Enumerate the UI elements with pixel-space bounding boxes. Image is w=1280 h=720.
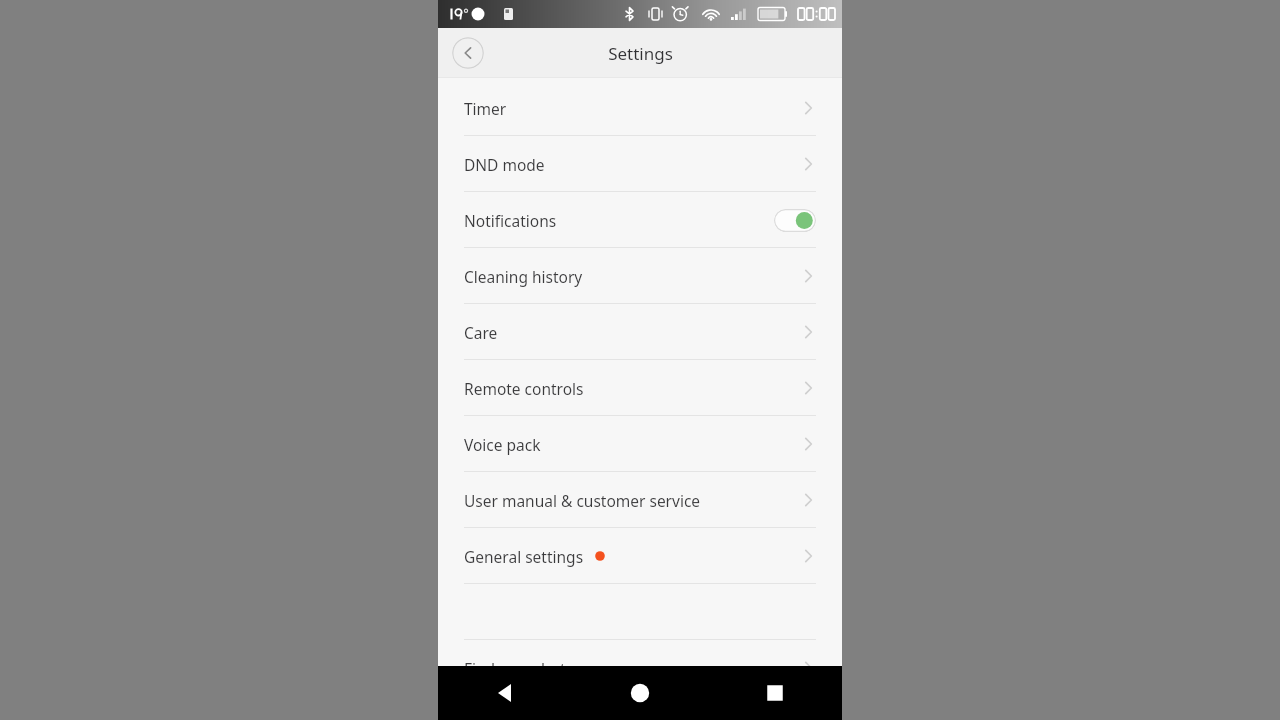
- staticText: Cleaning history: [464, 266, 583, 287]
- button[interactable]: DND mode: [438, 136, 842, 192]
- staticText: Find my robot vacuum: [464, 658, 628, 679]
- staticText: DND mode: [464, 154, 545, 175]
- button[interactable]: Find my robot vacuum: [438, 640, 842, 696]
- staticText: Remote controls: [464, 378, 584, 399]
- button[interactable]: Timer: [438, 80, 842, 136]
- button[interactable]: Back: [452, 37, 484, 69]
- button[interactable]: Back: [438, 666, 572, 720]
- staticText: Timer: [464, 98, 507, 119]
- staticText: User manual & customer service: [464, 490, 701, 511]
- staticText: Voice pack: [464, 434, 541, 455]
- staticText: Notifications: [464, 210, 557, 231]
- button[interactable]: Recent apps: [707, 666, 842, 720]
- button[interactable]: Care: [438, 304, 842, 360]
- button[interactable]: General settings: [438, 528, 842, 584]
- button[interactable]: Voice pack: [438, 416, 842, 472]
- button[interactable]: User manual & customer service: [438, 472, 842, 528]
- staticText: Settings: [608, 42, 673, 65]
- button[interactable]: Notifications toggle, on: [774, 209, 816, 232]
- staticText: General settings: [464, 546, 584, 567]
- button[interactable]: Notifications: [438, 192, 842, 248]
- staticText: Care: [464, 322, 498, 343]
- button[interactable]: Cleaning history: [438, 248, 842, 304]
- button[interactable]: Remote controls: [438, 360, 842, 416]
- button[interactable]: Home: [572, 666, 707, 720]
